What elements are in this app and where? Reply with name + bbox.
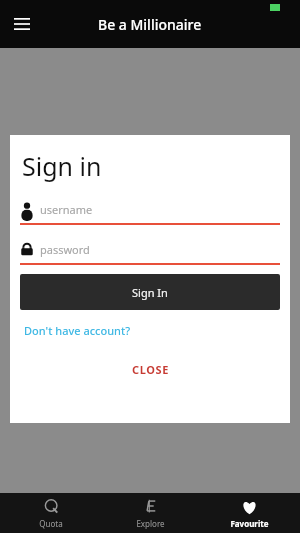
button[interactable]: Menu (8, 10, 36, 38)
button[interactable]: Explore (102, 495, 198, 532)
staticText: password (40, 242, 90, 257)
button[interactable]: CLOSE (118, 357, 183, 382)
button[interactable]: Quota (3, 495, 99, 532)
button[interactable]: password (20, 239, 280, 259)
staticText: Don't have account? (24, 323, 131, 338)
button[interactable]: username (20, 199, 280, 219)
staticText: username (40, 202, 93, 217)
staticText: Quota (39, 518, 63, 529)
staticText: CLOSE (132, 362, 169, 377)
staticText: Be a Millionaire (98, 15, 202, 34)
button[interactable]: Don't have account? (22, 320, 133, 341)
staticText: Sign in (22, 149, 102, 183)
staticText: Favourite (230, 518, 269, 529)
staticText: Sign In (132, 285, 168, 300)
button[interactable]: Sign In (20, 274, 280, 310)
button[interactable]: Favourite (201, 495, 297, 532)
staticText: Explore (136, 518, 165, 529)
